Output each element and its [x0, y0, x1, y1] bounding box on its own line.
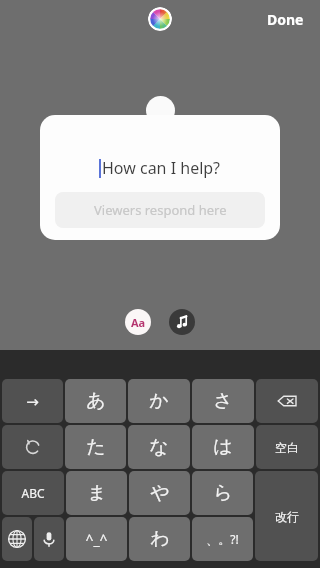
staticText: わ — [150, 527, 170, 551]
button[interactable]: ABC — [2, 471, 64, 515]
button[interactable]: ま — [66, 471, 127, 515]
button[interactable]: 空白 — [256, 425, 318, 469]
staticText: Aa — [131, 315, 146, 330]
button[interactable]: Backspace — [256, 379, 318, 423]
button[interactable]: Color picker — [148, 7, 172, 31]
staticText: ま — [87, 481, 107, 505]
staticText: あ — [86, 389, 106, 413]
staticText: → — [26, 393, 39, 410]
button[interactable]: さ — [192, 379, 254, 423]
button[interactable]: な — [128, 425, 190, 469]
staticText: Viewers respond here — [94, 201, 227, 219]
button[interactable]: → — [2, 379, 63, 423]
button[interactable]: Language — [2, 517, 32, 561]
staticText: How can I help? — [102, 157, 221, 179]
staticText: ^_^ — [85, 530, 108, 549]
staticText: さ — [213, 389, 233, 413]
button[interactable]: Voice input — [34, 517, 64, 561]
button[interactable]: ら — [192, 471, 253, 515]
staticText: 空白 — [275, 440, 299, 455]
button[interactable]: や — [129, 471, 190, 515]
button[interactable]: わ — [129, 517, 190, 561]
staticText: な — [149, 435, 169, 459]
staticText: や — [150, 481, 170, 505]
button[interactable]: 、。?! — [192, 517, 253, 561]
staticText: ABC — [21, 485, 45, 501]
staticText: は — [213, 435, 233, 459]
staticText: 、。?! — [206, 531, 239, 547]
button[interactable]: Done — [261, 8, 310, 31]
staticText: か — [149, 389, 169, 413]
staticText: た — [86, 435, 106, 459]
button[interactable]: Undo — [2, 425, 63, 469]
button[interactable]: Viewers respond here — [55, 192, 265, 228]
button[interactable]: 改行 — [255, 471, 318, 561]
button[interactable]: か — [128, 379, 190, 423]
staticText: ら — [213, 481, 233, 505]
button[interactable]: た — [65, 425, 126, 469]
button[interactable]: は — [192, 425, 254, 469]
button[interactable]: ^_^ — [66, 517, 127, 561]
staticText: Done — [267, 10, 304, 29]
button[interactable]: Music — [169, 309, 195, 335]
staticText: 改行 — [275, 509, 299, 524]
button[interactable]: Text style — [125, 309, 151, 335]
button[interactable]: あ — [65, 379, 126, 423]
button[interactable]: How can I help? — [40, 115, 280, 240]
